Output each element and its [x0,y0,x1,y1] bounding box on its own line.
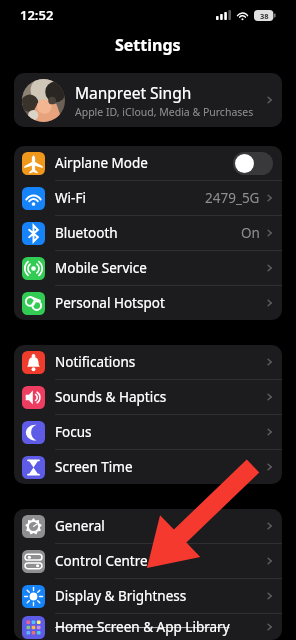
staticText: Notifications [55,353,266,371]
button[interactable]: Sounds & Haptics [14,380,282,415]
staticText: Display & Brightness [55,587,266,605]
staticText: Home Screen & App Library [55,618,266,636]
staticText: Manpreet Singh [75,82,192,103]
staticText: Apple ID, iCloud, Media & Purchases [75,105,254,119]
staticText: Personal Hotspot [55,294,266,312]
button[interactable]: Home Screen & App Library [14,614,282,640]
staticText: 12:52 [20,6,54,24]
button[interactable]: Focus [14,415,282,450]
other: Annotation arrow [0,0,296,640]
button[interactable]: Control Centre [14,544,282,579]
staticText: Airplane Mode [55,154,233,172]
other: Cellular signal [216,10,231,20]
staticText: On [241,224,260,242]
button[interactable]: Screen Time [14,450,282,484]
other: Wi-Fi [236,10,249,20]
staticText: 38 [260,11,269,21]
staticText: Settings [115,34,181,56]
button[interactable]: Mobile Service [14,251,282,286]
staticText: Sounds & Haptics [55,388,266,406]
button[interactable]: Manpreet Singh [14,73,282,127]
staticText: 2479_5G [205,189,260,207]
button[interactable]: Personal Hotspot [14,286,282,320]
button[interactable]: Notifications [14,345,282,380]
staticText: Bluetooth [55,224,241,242]
staticText: General [55,517,266,535]
button[interactable]: Wi-Fi [14,181,282,216]
staticText: Focus [55,423,266,441]
button[interactable]: Bluetooth [14,216,282,251]
staticText: Mobile Service [55,259,266,277]
button[interactable]: Airplane Mode [14,146,282,181]
button[interactable]: General [14,509,282,544]
staticText: Screen Time [55,458,266,476]
staticText: Control Centre [55,552,266,570]
button[interactable]: Display & Brightness [14,579,282,614]
staticText: Wi-Fi [55,189,205,207]
